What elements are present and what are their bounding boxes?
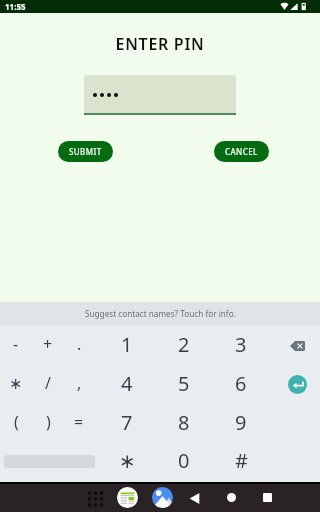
button[interactable]: Photos app <box>152 487 173 508</box>
button[interactable]: 6 <box>227 369 255 397</box>
button[interactable]: # <box>227 446 255 474</box>
button[interactable]: 8 <box>170 408 198 436</box>
staticText: . <box>77 333 82 355</box>
button[interactable]: Suggest contact names? Touch for info. <box>0 302 320 325</box>
staticText: 9 <box>235 409 247 436</box>
button[interactable]: Backspace <box>283 331 312 360</box>
staticText: 6 <box>235 370 247 397</box>
button[interactable]: 7 <box>113 408 141 436</box>
staticText: 3 <box>235 331 247 358</box>
button[interactable]: CANCEL <box>214 141 269 162</box>
button[interactable]: = <box>65 408 93 436</box>
staticText: / <box>45 372 51 394</box>
staticText: , <box>77 372 82 394</box>
staticText: ∗ <box>119 449 136 472</box>
button[interactable]: SUBMIT <box>58 141 113 162</box>
staticText: 0 <box>178 447 190 474</box>
button[interactable]: ( <box>2 408 30 436</box>
staticText: 5 <box>178 370 190 397</box>
staticText: + <box>43 333 53 355</box>
staticText: 1 <box>121 331 133 358</box>
staticText: ∗ <box>9 374 23 393</box>
button[interactable]: + <box>34 330 62 358</box>
staticText: = <box>74 411 84 433</box>
staticText: 8 <box>178 409 190 436</box>
button[interactable]: News app <box>117 487 138 508</box>
button[interactable]: Back <box>188 492 200 504</box>
staticText: ENTER PIN <box>0 33 320 55</box>
button[interactable]: Home <box>227 493 236 502</box>
button[interactable]: . <box>65 330 93 358</box>
staticText: 2 <box>178 331 190 358</box>
staticText: CANCEL <box>225 146 258 157</box>
button[interactable]: / <box>34 369 62 397</box>
button[interactable]: 9 <box>227 408 255 436</box>
button[interactable]: ∗ <box>2 369 30 397</box>
button[interactable]: 2 <box>170 330 198 358</box>
staticText: ) <box>46 411 51 433</box>
button[interactable]: All apps <box>86 490 102 506</box>
staticText: - <box>13 333 19 355</box>
button[interactable]: - <box>2 330 30 358</box>
button[interactable]: Recents <box>263 493 272 502</box>
staticText: SUBMIT <box>69 146 102 157</box>
staticText: # <box>235 447 248 474</box>
staticText: 4 <box>121 370 133 397</box>
button[interactable]: 3 <box>227 330 255 358</box>
button[interactable]: 5 <box>170 369 198 397</box>
button[interactable]: Enter <box>283 370 312 399</box>
button[interactable]: , <box>65 369 93 397</box>
button[interactable]: 4 <box>113 369 141 397</box>
button[interactable]: ∗ <box>113 446 141 474</box>
staticText: ( <box>14 411 19 433</box>
staticText: 11:55 <box>5 1 26 12</box>
button[interactable]: 1 <box>113 330 141 358</box>
staticText: 7 <box>121 409 133 436</box>
button[interactable]: 0 <box>170 446 198 474</box>
button[interactable]: PIN field <box>84 75 236 115</box>
button[interactable]: ) <box>34 408 62 436</box>
staticText: Suggest contact names? Touch for info. <box>85 308 236 319</box>
